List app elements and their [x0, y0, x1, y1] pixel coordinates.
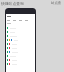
button[interactable] [6, 58, 35, 62]
button[interactable] [6, 46, 35, 50]
staticText: 站点查 [51, 1, 62, 5]
button[interactable] [6, 50, 35, 54]
button[interactable] [6, 26, 35, 30]
button[interactable] [6, 38, 35, 42]
button[interactable] [6, 42, 35, 46]
staticText: 快捷站点查询 [1, 1, 24, 6]
button[interactable] [6, 34, 35, 38]
button[interactable] [6, 30, 35, 34]
button[interactable]: Search [51, 1, 62, 5]
button[interactable] [6, 62, 35, 66]
button[interactable] [6, 54, 35, 58]
